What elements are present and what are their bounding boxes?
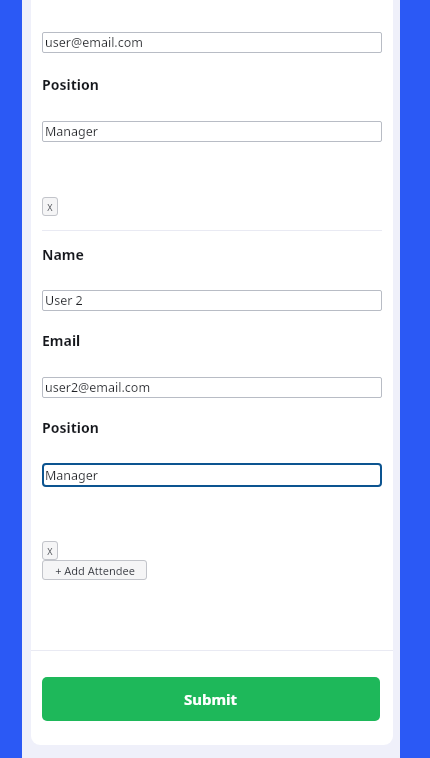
staticText: user@email.com xyxy=(45,34,143,51)
staticText: Position xyxy=(42,75,99,94)
button[interactable]: Remove attendee 2 xyxy=(42,541,58,560)
button[interactable]: Manager xyxy=(42,121,382,142)
staticText: Manager xyxy=(45,467,98,484)
button[interactable]: User 2 xyxy=(42,290,382,311)
staticText: Submit xyxy=(184,689,238,709)
staticText: Manager xyxy=(45,123,98,140)
staticText: Position xyxy=(42,418,99,437)
button[interactable]: Remove attendee 1 xyxy=(42,197,58,216)
button[interactable]: Manager xyxy=(42,463,382,487)
staticText: X xyxy=(47,201,53,213)
button[interactable]: user2@email.com xyxy=(42,377,382,398)
button[interactable]: user@email.com xyxy=(42,32,382,53)
staticText: user2@email.com xyxy=(45,379,151,396)
staticText: + Add Attendee xyxy=(55,563,135,578)
button[interactable]: + Add Attendee xyxy=(42,560,147,580)
staticText: Email xyxy=(42,331,81,350)
button[interactable]: Submit xyxy=(42,677,380,721)
staticText: User 2 xyxy=(45,292,83,309)
staticText: X xyxy=(47,545,53,557)
staticText: Name xyxy=(42,245,84,264)
